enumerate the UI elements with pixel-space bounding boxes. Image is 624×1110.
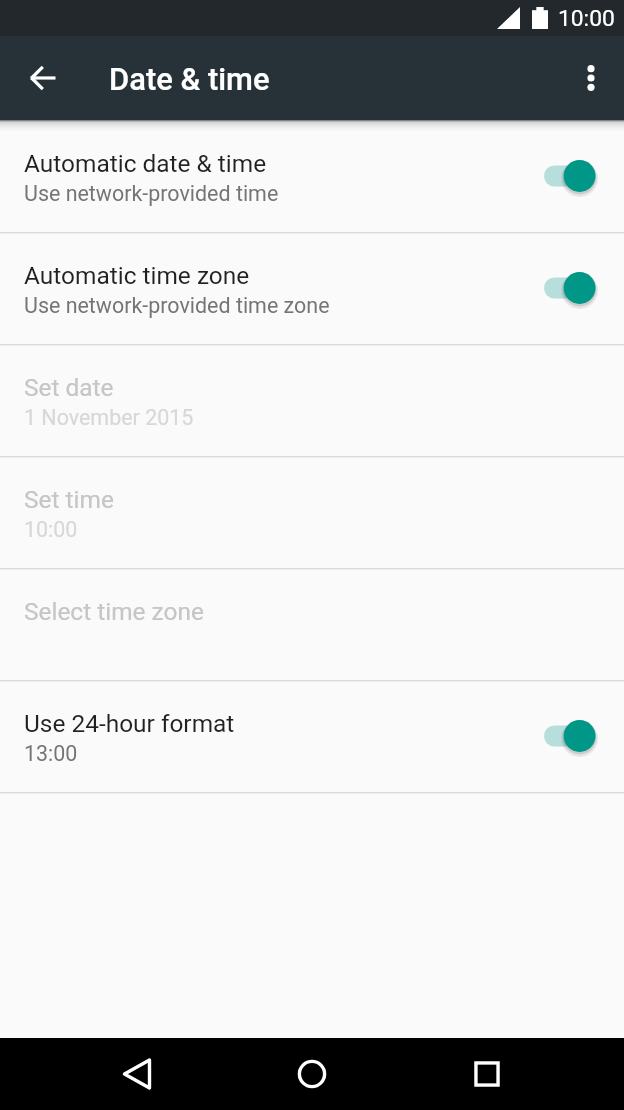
button[interactable]: Set date: [0, 344, 624, 456]
staticText: Date & time: [109, 61, 270, 97]
staticText: Set time: [24, 485, 114, 514]
staticText: 10:00: [24, 517, 78, 542]
staticText: Set date: [24, 373, 114, 402]
staticText: 1 November 2015: [24, 405, 194, 430]
staticText: 13:00: [24, 741, 78, 766]
staticText: 10:00: [558, 5, 615, 32]
staticText: Automatic date & time: [24, 149, 267, 178]
button[interactable]: Navigate up: [7, 42, 79, 114]
button[interactable]: Home: [254, 1038, 370, 1110]
button[interactable]: Automatic time zone: [0, 232, 624, 344]
staticText: Use network-provided time: [24, 181, 279, 206]
button[interactable]: Automatic date & time: [0, 120, 624, 232]
button[interactable]: Recents: [429, 1038, 545, 1110]
staticText: Automatic time zone: [24, 261, 250, 290]
button[interactable]: Use 24-hour format: [0, 680, 624, 792]
button[interactable]: Back: [79, 1038, 195, 1110]
button[interactable]: Set time: [0, 456, 624, 568]
button[interactable]: Select time zone: [0, 568, 624, 680]
staticText: Use 24-hour format: [24, 709, 235, 738]
staticText: Select time zone: [24, 597, 204, 626]
staticText: Use network-provided time zone: [24, 293, 330, 318]
button[interactable]: More options: [555, 42, 624, 114]
